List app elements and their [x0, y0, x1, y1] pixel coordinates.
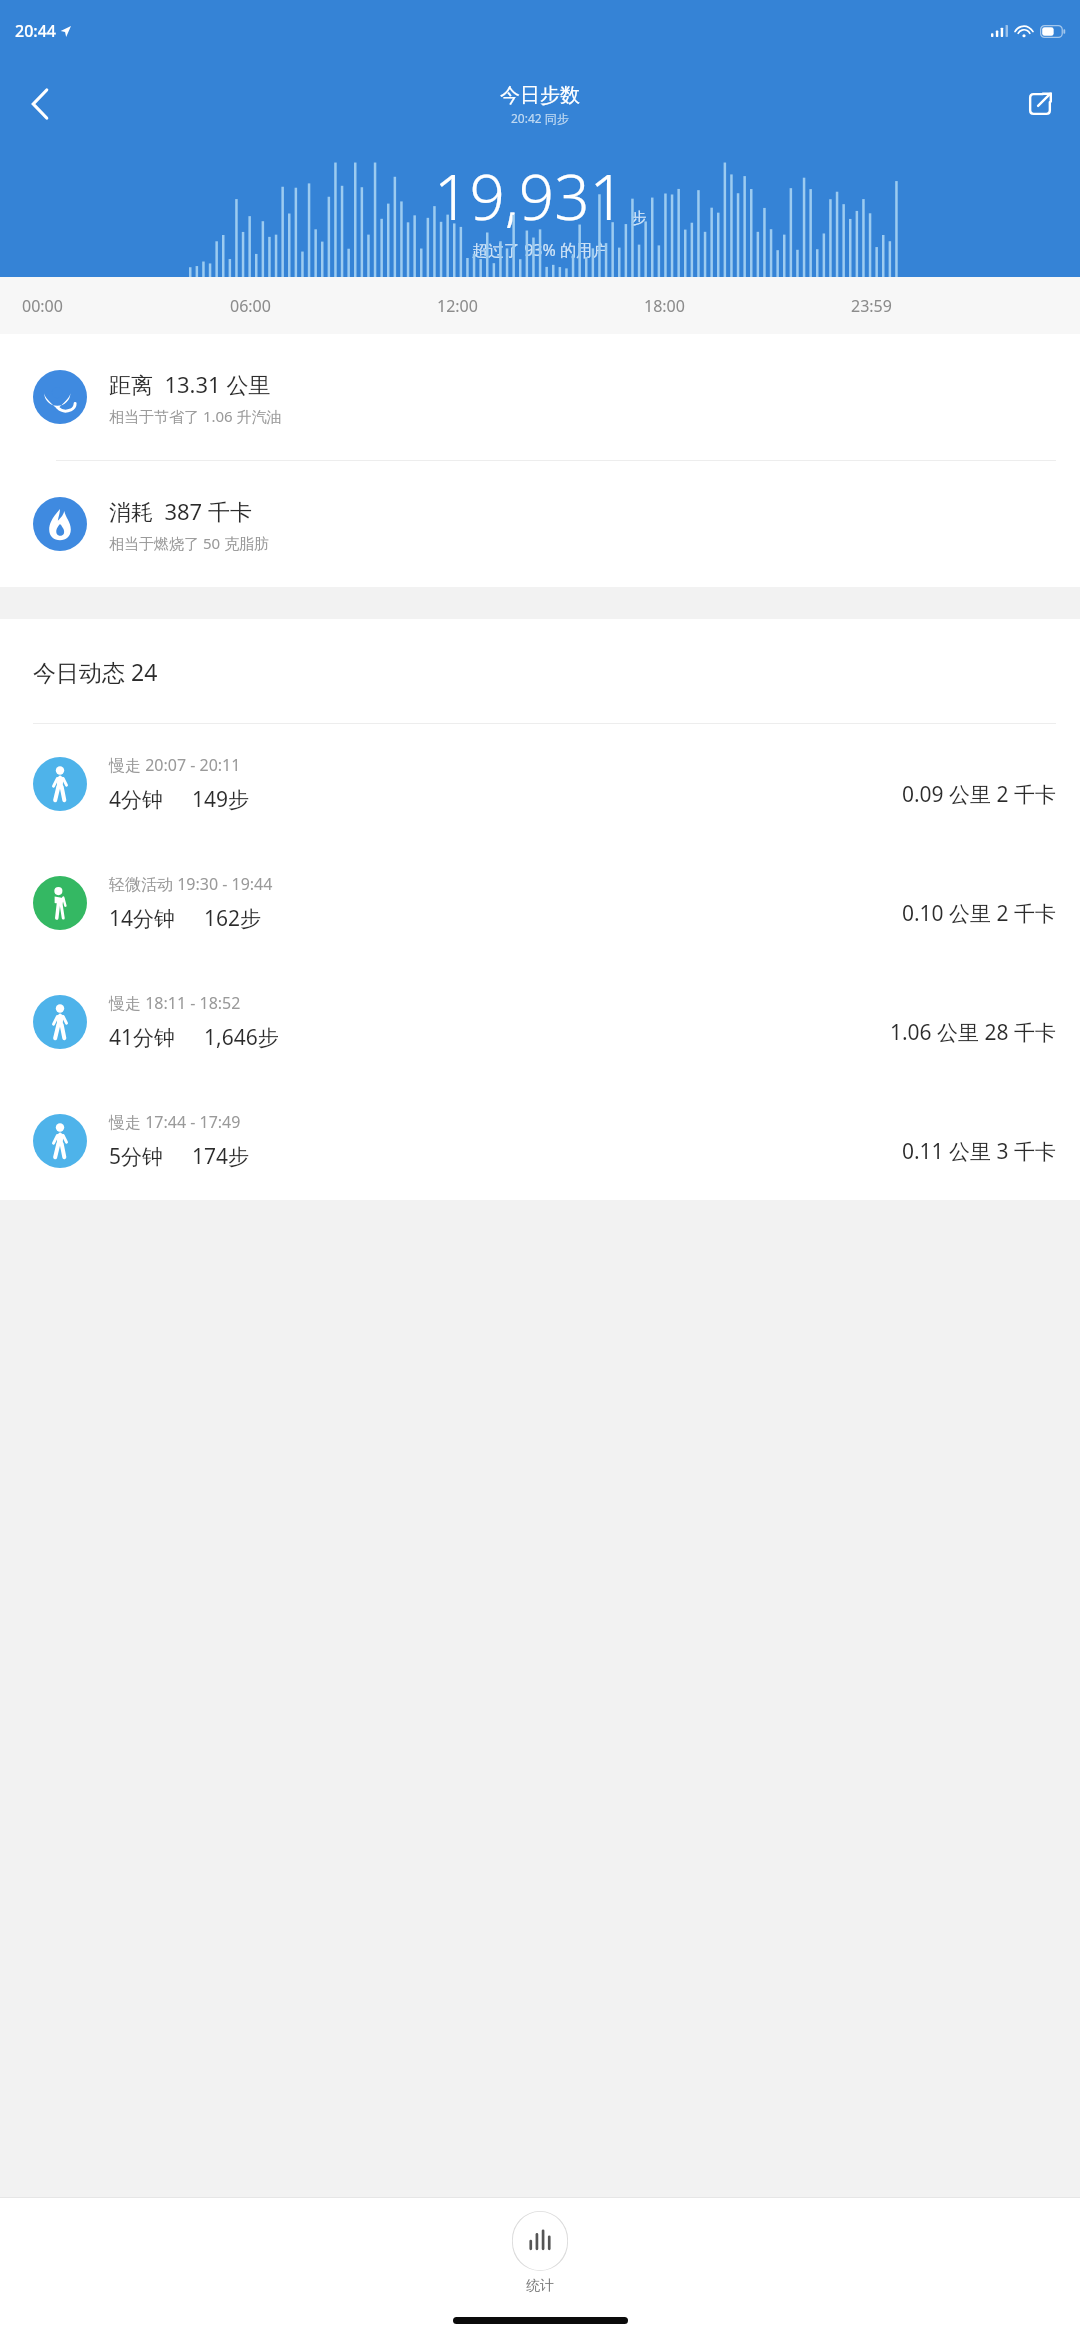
- staticText: 1.06 公里 28 千卡: [889, 1018, 1056, 1047]
- staticText: 14分钟: [109, 904, 176, 933]
- staticText: 超过了 93% 的用户: [472, 239, 608, 261]
- staticText: 相当于节省了 1.06 升汽油: [109, 406, 282, 426]
- staticText: 慢走 20:07 - 20:11: [109, 754, 241, 776]
- button[interactable]: 慢走 20:07 - 20:11: [0, 724, 1080, 843]
- staticText: 0.10 公里 2 千卡: [901, 899, 1056, 928]
- staticText: 20:44: [15, 20, 56, 42]
- staticText: 消耗 387 千卡: [109, 496, 252, 526]
- staticText: 距离 13.31 公里: [109, 369, 271, 399]
- staticText: 06:00: [230, 295, 437, 317]
- staticText: 5分钟: [109, 1142, 164, 1171]
- staticText: 174步: [192, 1142, 250, 1171]
- button[interactable]: 慢走 18:11 - 18:52: [0, 962, 1080, 1081]
- button[interactable]: Share: [1010, 74, 1070, 134]
- staticText: 慢走 18:11 - 18:52: [109, 992, 241, 1014]
- staticText: 相当于燃烧了 50 克脂肪: [109, 533, 269, 553]
- button[interactable]: 统计: [480, 2198, 600, 2303]
- staticText: 149步: [192, 785, 250, 814]
- button[interactable]: Back: [8, 72, 72, 136]
- staticText: 12:00: [437, 295, 644, 317]
- staticText: 20:42 同步: [511, 110, 569, 126]
- staticText: 162步: [204, 904, 262, 933]
- staticText: 今日步数: [500, 83, 580, 108]
- staticText: 19,931: [434, 154, 625, 238]
- staticText: 1,646步: [204, 1023, 279, 1052]
- button[interactable]: 慢走 17:44 - 17:49: [0, 1081, 1080, 1200]
- staticText: 0.09 公里 2 千卡: [901, 780, 1056, 809]
- button[interactable]: 消耗 387 千卡: [0, 461, 1080, 587]
- staticText: 23:59: [851, 295, 1058, 317]
- staticText: 统计: [526, 2277, 554, 2295]
- staticText: 18:00: [644, 295, 851, 317]
- button[interactable]: 轻微活动 19:30 - 19:44: [0, 843, 1080, 962]
- staticText: 00:00: [22, 295, 230, 317]
- staticText: 步: [631, 209, 646, 228]
- staticText: 慢走 17:44 - 17:49: [109, 1111, 241, 1133]
- staticText: 轻微活动 19:30 - 19:44: [109, 873, 273, 895]
- staticText: 0.11 公里 3 千卡: [901, 1137, 1056, 1166]
- staticText: 41分钟: [109, 1023, 176, 1052]
- button[interactable]: 距离 13.31 公里: [0, 334, 1080, 460]
- staticText: 今日动态 24: [33, 656, 158, 687]
- staticText: 4分钟: [109, 785, 164, 814]
